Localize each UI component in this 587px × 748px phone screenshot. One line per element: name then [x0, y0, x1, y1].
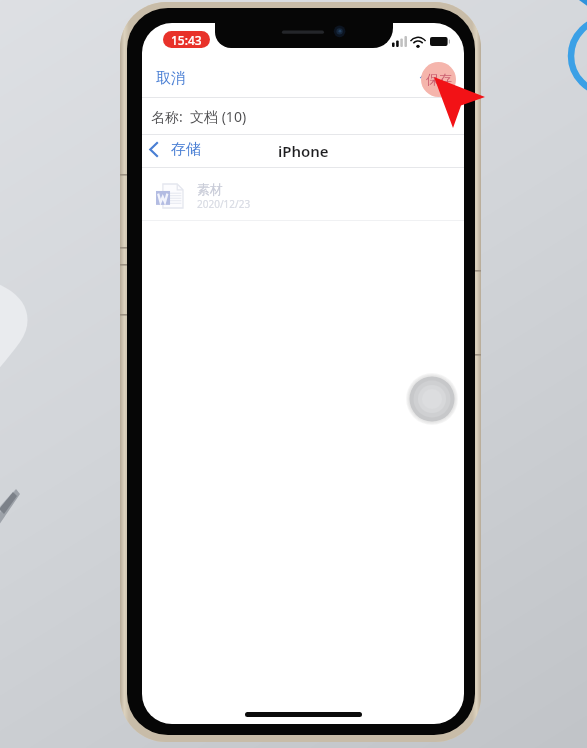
button[interactable]: 保存 [412, 56, 458, 100]
staticText: 保存 [420, 69, 450, 88]
staticText: 存储 [171, 140, 201, 159]
button[interactable]: 素材 [142, 170, 464, 222]
button[interactable]: 取消 [148, 56, 194, 100]
staticText: 取消 [156, 69, 186, 88]
button[interactable]: 存储 [146, 133, 204, 165]
staticText: 保存 [426, 71, 452, 87]
staticText: 名称: 文档 (10) [151, 107, 247, 126]
button[interactable]: AssistiveTouch [406, 373, 458, 425]
staticText: iPhone [278, 141, 329, 161]
staticText: 2020/12/23 [197, 197, 251, 211]
staticText: 15:43 [171, 32, 202, 48]
staticText: 素材 [197, 181, 223, 197]
